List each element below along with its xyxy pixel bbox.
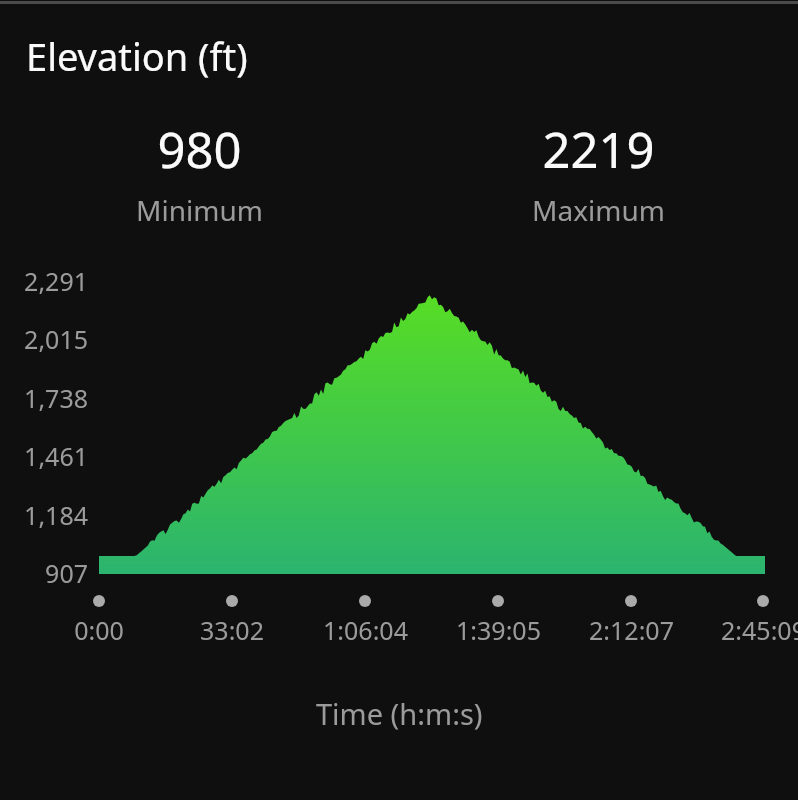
staticText: Elevation (ft) (26, 30, 248, 82)
staticText: Minimum (136, 191, 263, 229)
button[interactable]: 980 (0, 116, 399, 229)
staticText: 2:45:09 (721, 613, 798, 647)
staticText: 980 (157, 116, 242, 183)
staticText: 1,461 (24, 439, 88, 473)
staticText: 2219 (542, 116, 655, 183)
staticText: 2,291 (24, 264, 88, 298)
staticText: 2:12:07 (589, 613, 674, 647)
staticText: 0:00 (74, 613, 124, 647)
staticText: 1:39:05 (456, 613, 541, 647)
staticText: 907 (45, 556, 88, 590)
staticText: 1,184 (24, 498, 88, 532)
button[interactable]: 2219 (399, 116, 798, 229)
staticText: 2,015 (24, 322, 88, 356)
staticText: 1,738 (24, 381, 88, 415)
staticText: Time (h:m:s) (316, 694, 483, 733)
staticText: 33:02 (200, 613, 264, 647)
staticText: 1:06:04 (323, 613, 408, 647)
button[interactable]: Elevation profile chart (0, 255, 798, 655)
staticText: Maximum (532, 191, 665, 229)
